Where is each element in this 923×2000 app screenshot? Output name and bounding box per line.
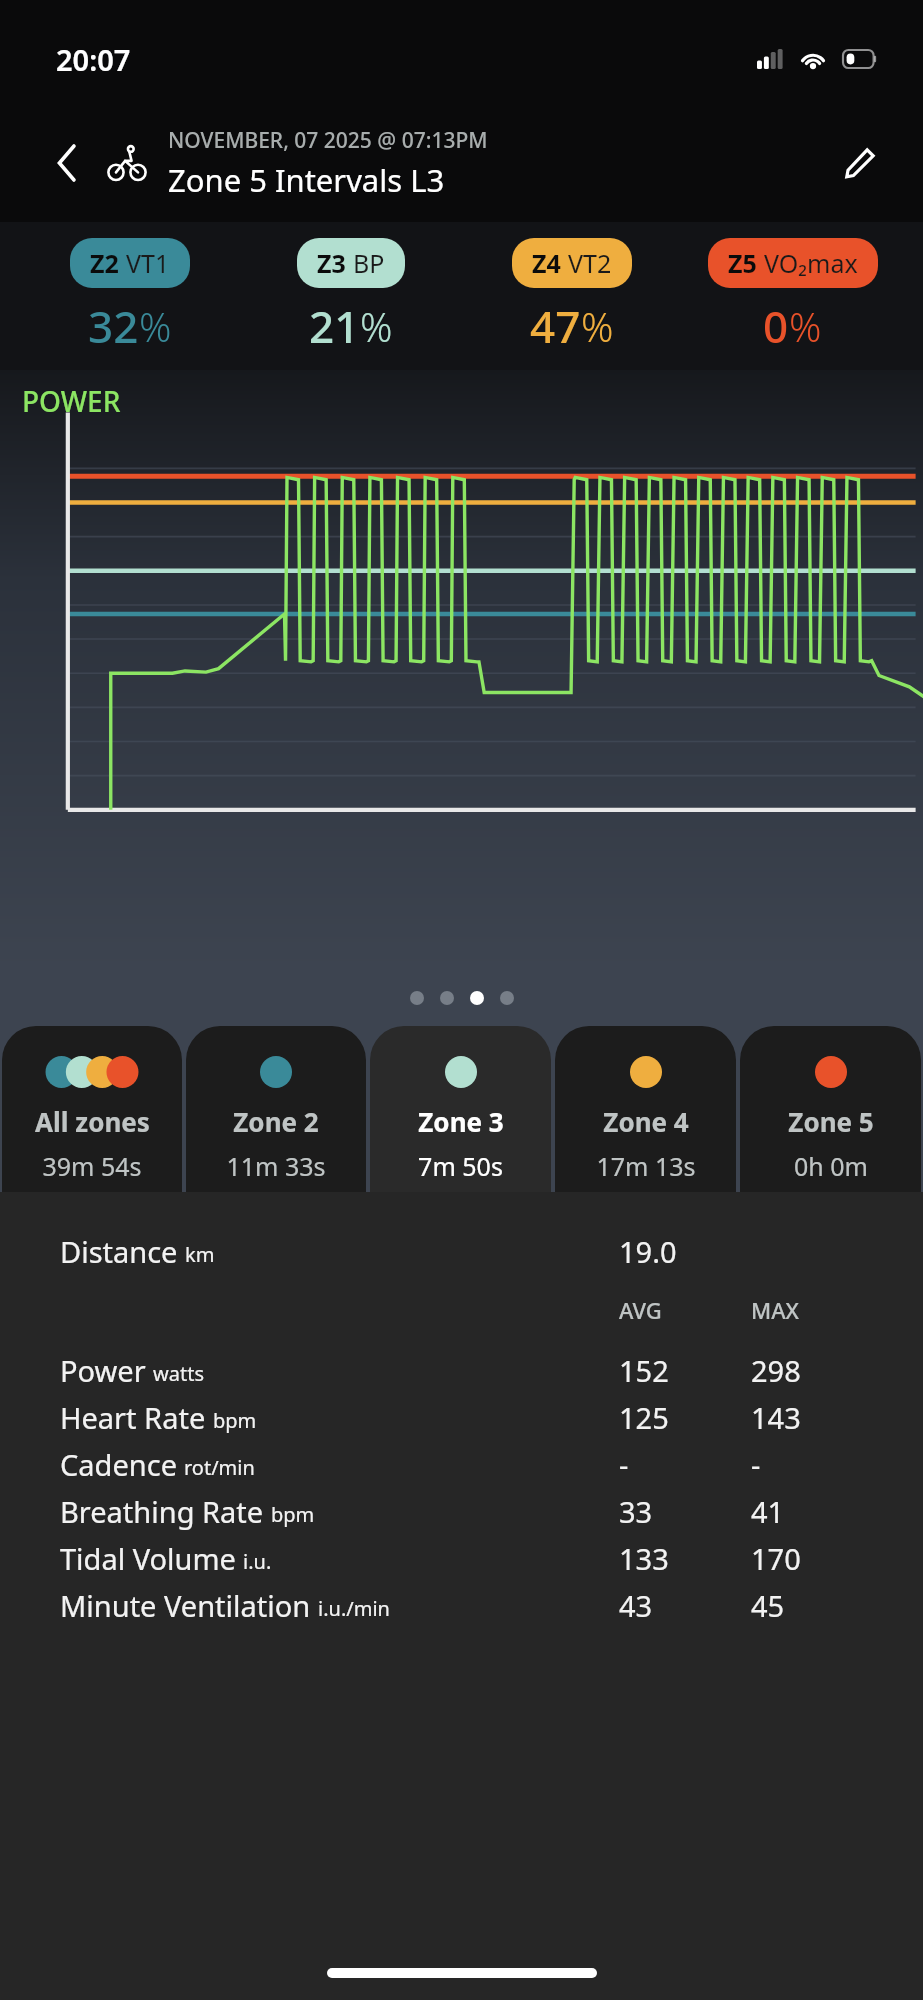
staticText: VT1	[126, 246, 170, 280]
staticText: 11m 33s	[226, 1149, 326, 1183]
button[interactable]: Z3	[297, 238, 405, 288]
staticText: bpm	[271, 1501, 315, 1528]
button[interactable]: Zone 3	[370, 1026, 551, 1192]
staticText: VO₂max	[764, 246, 858, 280]
staticText: 133	[619, 1539, 669, 1578]
staticText: Zone 3	[418, 1104, 504, 1139]
staticText: %	[581, 299, 614, 353]
staticText: Zone 5	[788, 1104, 874, 1139]
staticText: 21	[309, 296, 360, 356]
staticText: MAX	[751, 1295, 800, 1325]
staticText: VT2	[568, 246, 612, 280]
staticText: Zone 2	[233, 1104, 319, 1139]
staticText: %	[360, 299, 393, 353]
staticText: Z4	[532, 246, 561, 280]
staticText: 0h 0m	[794, 1149, 868, 1183]
staticText: bpm	[213, 1407, 257, 1434]
staticText: 143	[751, 1398, 801, 1437]
button[interactable]: Zone 4	[555, 1026, 736, 1192]
staticText: Tidal Volume	[60, 1539, 236, 1578]
staticText: Z2	[90, 246, 119, 280]
staticText: 41	[751, 1492, 785, 1531]
staticText: %	[789, 299, 822, 353]
staticText: 0	[763, 296, 789, 356]
staticText: watts	[153, 1360, 204, 1387]
staticText: -	[619, 1445, 629, 1484]
staticText: AVG	[619, 1295, 662, 1325]
staticText: 298	[751, 1351, 801, 1390]
staticText: 7m 50s	[418, 1149, 503, 1183]
button[interactable]	[470, 991, 484, 1005]
staticText: NOVEMBER, 07 2025 @ 07:13PM	[168, 126, 488, 155]
staticText: Zone 5 Intervals L3	[168, 159, 445, 201]
button[interactable]: Zone 5	[740, 1026, 921, 1192]
button[interactable]: Power	[60, 1347, 883, 1394]
button[interactable]: Edit	[833, 136, 887, 190]
staticText: 47	[530, 296, 581, 356]
button[interactable]: Breathing Rate	[60, 1488, 883, 1535]
staticText: i.u./min	[318, 1595, 390, 1622]
button[interactable]: Tidal Volume	[60, 1535, 883, 1582]
button[interactable]: Cadence	[60, 1441, 883, 1488]
staticText: Cadence	[60, 1445, 177, 1484]
staticText: rot/min	[184, 1454, 255, 1481]
button[interactable]	[410, 991, 424, 1005]
staticText: -	[751, 1445, 761, 1484]
button[interactable]	[500, 991, 514, 1005]
staticText: 32	[88, 296, 139, 356]
button[interactable]: Z4	[512, 238, 632, 288]
staticText: All zones	[35, 1104, 150, 1139]
button[interactable]: Distance	[60, 1228, 883, 1275]
staticText: Breathing Rate	[60, 1492, 264, 1531]
staticText: 20:07	[56, 40, 131, 79]
staticText: POWER	[22, 382, 121, 420]
staticText: 17m 13s	[596, 1149, 696, 1183]
staticText: 43	[619, 1586, 653, 1625]
staticText: km	[185, 1241, 215, 1268]
staticText: Power	[60, 1351, 146, 1390]
button[interactable]: Zone 2	[186, 1026, 366, 1192]
staticText: Heart Rate	[60, 1398, 206, 1437]
staticText: 33	[619, 1492, 653, 1531]
staticText: 170	[751, 1539, 801, 1578]
button[interactable]: Cycling activity	[102, 138, 152, 188]
button[interactable]: All zones	[2, 1026, 182, 1192]
button[interactable]	[440, 991, 454, 1005]
staticText: 45	[751, 1586, 785, 1625]
staticText: 19.0	[619, 1232, 677, 1271]
staticText: Z5	[728, 246, 757, 280]
staticText: 152	[619, 1351, 669, 1390]
staticText: BP	[353, 246, 385, 280]
staticText: 125	[619, 1398, 669, 1437]
button[interactable]: Back	[44, 140, 90, 186]
button[interactable]: Z2	[70, 238, 190, 288]
staticText: 39m 54s	[42, 1149, 142, 1183]
button[interactable]: Z5	[708, 238, 878, 288]
button[interactable]: Heart Rate	[60, 1394, 883, 1441]
staticText: i.u.	[243, 1548, 272, 1575]
staticText: %	[139, 299, 172, 353]
staticText: Minute Ventilation	[60, 1586, 311, 1625]
staticText: Z3	[317, 246, 346, 280]
button[interactable]: Minute Ventilation	[60, 1582, 883, 1629]
staticText: Distance	[60, 1232, 178, 1271]
staticText: Zone 4	[603, 1104, 689, 1139]
